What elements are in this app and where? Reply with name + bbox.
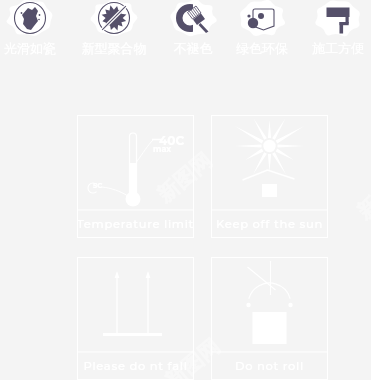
other: New polymer [86,0,142,40]
button[interactable]: Smooth as porcelain [0,0,66,54]
staticText: 不褪色 [157,40,229,56]
button[interactable]: New polymer [78,0,150,54]
staticText: 绿色环保 [226,40,298,56]
staticText: Do not roll [211,359,328,373]
staticText: 新型聚合物 [78,40,150,56]
button[interactable]: Easy to apply [302,0,371,54]
staticText: 新图网 [160,333,225,380]
button[interactable]: Do not roll [211,257,328,380]
staticText: 施工方便 [302,40,371,56]
staticText: Keep off the sun [211,217,328,231]
button[interactable]: Eco friendly [226,0,298,54]
other: Smooth as porcelain [2,0,58,40]
staticText: 光滑如瓷 [0,40,66,56]
other: Does not fade [165,0,221,40]
staticText: 5C [93,181,103,190]
button[interactable]: 40C [77,115,194,238]
staticText: Temperature limit [77,217,194,231]
staticText: max [153,144,172,154]
staticText: Please do nt fall [77,359,194,373]
button[interactable]: Does not fade [157,0,229,54]
other: Eco friendly [234,0,290,40]
staticText: 40C [159,133,185,148]
other: Easy to apply [310,0,366,40]
button[interactable]: Keep off the sun [211,115,328,238]
